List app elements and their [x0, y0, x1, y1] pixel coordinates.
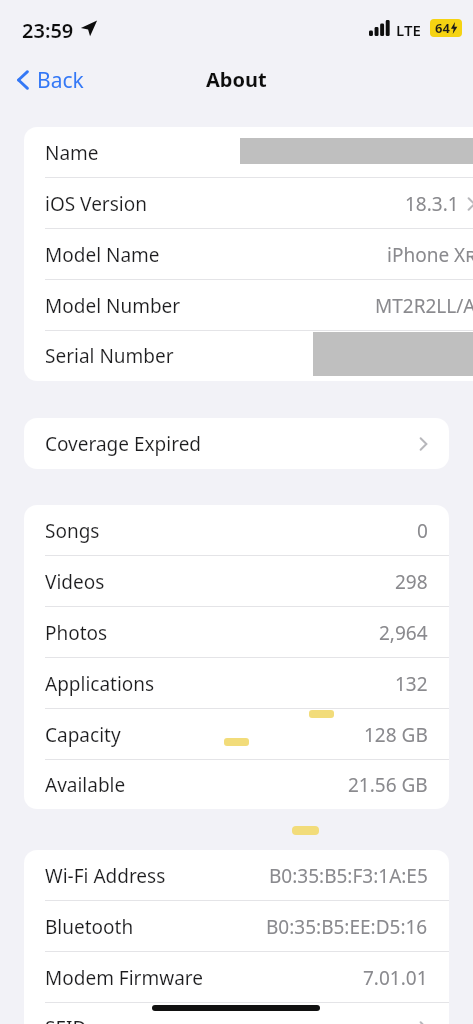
staticText: About	[206, 66, 267, 93]
staticText: iOS Version	[45, 191, 147, 217]
staticText: Capacity	[45, 722, 121, 748]
staticText: Coverage Expired	[45, 431, 202, 457]
staticText: Model Name	[45, 242, 160, 268]
staticText: Back	[37, 66, 84, 95]
staticText: Modem Firmware	[45, 965, 203, 991]
staticText: Applications	[45, 671, 155, 697]
staticText: Serial Number	[45, 343, 174, 369]
staticText: Available	[45, 772, 126, 798]
staticText: LTE	[396, 20, 421, 40]
staticText: Name	[45, 140, 99, 166]
staticText: Model Number	[45, 293, 181, 319]
staticText: Bluetooth	[45, 914, 134, 940]
button[interactable]: Back	[16, 62, 84, 98]
staticText: 132	[395, 671, 428, 697]
staticText: 128 GB	[364, 722, 428, 748]
staticText: 23:59	[22, 17, 74, 44]
staticText: 21.56 GB	[348, 772, 428, 798]
button[interactable]: iOS Version	[24, 178, 473, 229]
button[interactable]: Coverage Expired	[24, 418, 449, 469]
staticText: Photos	[45, 620, 108, 646]
staticText: MT2R2LL/A	[375, 293, 473, 319]
staticText: Videos	[45, 569, 105, 595]
staticText: Wi-Fi Address	[45, 863, 166, 889]
staticText: B0:35:B5:EE:D5:16	[266, 914, 428, 940]
staticText: 18.3.1	[405, 191, 459, 217]
button[interactable]: Coverage Expired	[24, 418, 449, 469]
staticText: 2,964	[379, 620, 428, 646]
staticText: SEID	[45, 1015, 87, 1024]
staticText: Songs	[45, 518, 100, 544]
button[interactable]: SEID	[24, 1003, 449, 1024]
staticText: 298	[395, 569, 428, 595]
staticText: 64	[435, 19, 450, 37]
staticText: 7.01.01	[363, 965, 428, 991]
staticText: B0:35:B5:F3:1A:E5	[269, 863, 428, 889]
staticText: 0	[417, 518, 428, 544]
staticText: iPhone Xʀ	[387, 242, 473, 268]
